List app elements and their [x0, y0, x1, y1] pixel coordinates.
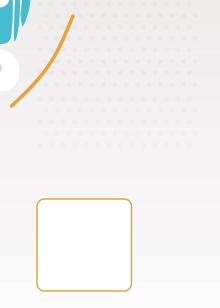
button[interactable] [37, 199, 131, 291]
